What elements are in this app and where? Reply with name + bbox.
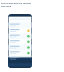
staticText: Search and find the content you need	[1, 2, 32, 8]
button[interactable]: App preview	[8, 14, 32, 68]
